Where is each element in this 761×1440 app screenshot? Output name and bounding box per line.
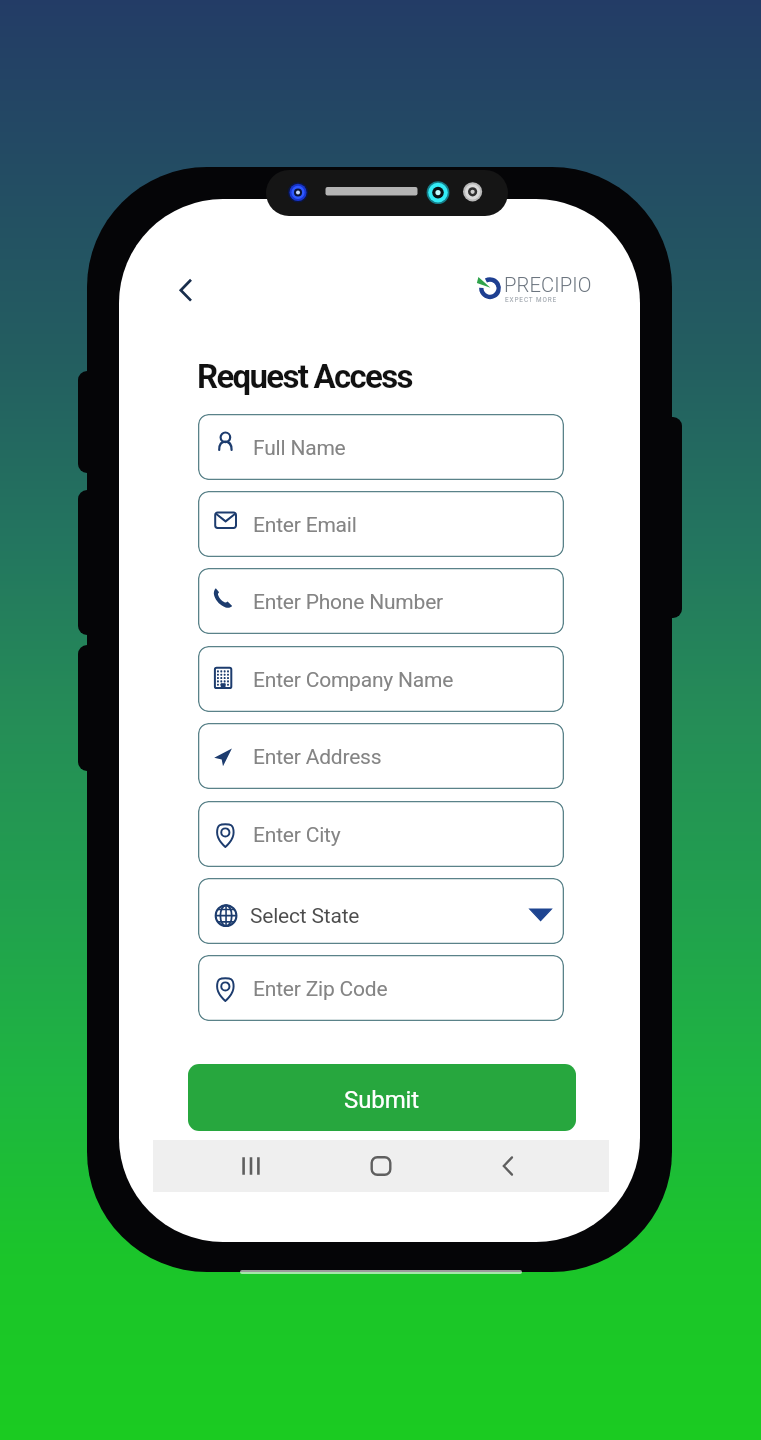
button[interactable]: Full Name (198, 414, 564, 480)
staticText: Enter Address (253, 745, 382, 770)
button[interactable]: Select State (198, 878, 564, 944)
button[interactable]: Enter Address (198, 723, 564, 789)
button[interactable]: Enter Phone Number (198, 568, 564, 634)
staticText: PRECIPIO (504, 273, 592, 297)
staticText: Enter City (253, 823, 341, 848)
button[interactable]: Enter City (198, 801, 564, 867)
staticText: Enter Company Name (253, 668, 454, 693)
button[interactable]: Enter Zip Code (198, 955, 564, 1021)
staticText: Select State (250, 904, 360, 929)
button[interactable]: Enter Company Name (198, 646, 564, 712)
button[interactable]: Back (169, 267, 213, 313)
button[interactable]: Back (479, 1140, 543, 1192)
button[interactable]: Enter Email (198, 491, 564, 557)
staticText: Enter Email (253, 513, 357, 538)
staticText: Full Name (253, 436, 346, 461)
button[interactable]: Submit (188, 1064, 576, 1131)
staticText: Submit (344, 1086, 420, 1114)
staticText: Enter Phone Number (253, 590, 444, 615)
staticText: Enter Zip Code (253, 977, 388, 1002)
staticText: Request Access (197, 357, 412, 396)
button[interactable]: Home (349, 1140, 413, 1192)
staticText: EXPECT MORE (505, 296, 558, 304)
button[interactable]: Recent apps (219, 1140, 283, 1192)
